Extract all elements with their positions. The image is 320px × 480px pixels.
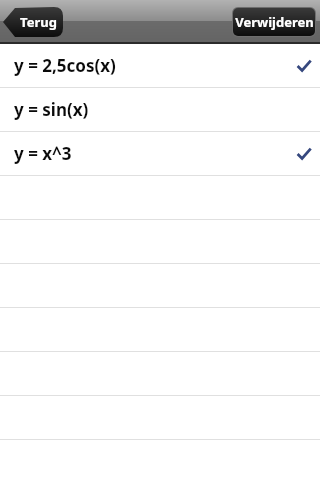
button[interactable]: y = sin(x) [0,88,320,132]
button[interactable]: Verwijderen [233,8,315,36]
staticText: Verwijderen [235,13,314,31]
button[interactable] [0,308,320,352]
staticText: y = x^3 [14,142,72,165]
button[interactable] [0,176,320,220]
button[interactable] [0,264,320,308]
staticText: Terug [20,13,57,31]
button[interactable]: y = x^3 [0,132,320,176]
other: Selected [296,146,312,162]
staticText: y = sin(x) [14,98,89,121]
button[interactable]: Terug [3,7,63,37]
staticText: y = 2,5cos(x) [14,54,116,77]
button[interactable]: y = 2,5cos(x) [0,44,320,88]
other: Selected [296,58,312,74]
button[interactable] [0,352,320,396]
button[interactable] [0,220,320,264]
button[interactable] [0,396,320,440]
